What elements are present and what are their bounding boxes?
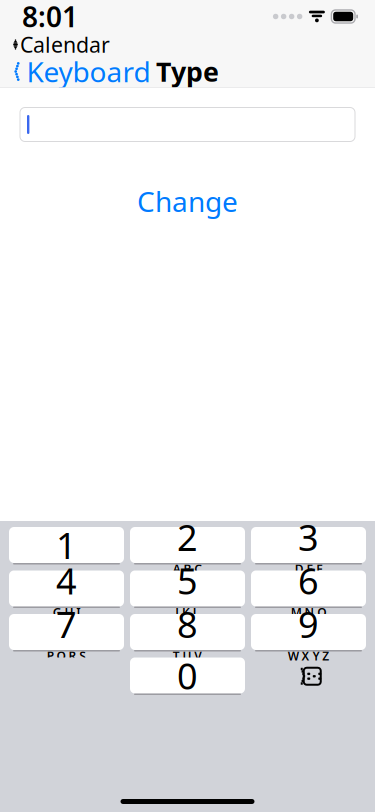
- staticText: Keyboard: [26, 53, 150, 90]
- staticText: 0: [177, 652, 198, 699]
- button[interactable]: 6: [251, 570, 366, 608]
- staticText: Change: [137, 182, 238, 220]
- staticText: E: [306, 561, 313, 577]
- button[interactable]: 8: [130, 614, 245, 651]
- staticText: H: [64, 604, 73, 620]
- staticText: L: [193, 604, 200, 620]
- staticText: T: [173, 648, 180, 664]
- staticText: 5: [177, 557, 198, 604]
- staticText: I: [76, 604, 80, 620]
- staticText: X: [302, 648, 310, 664]
- staticText: 8: [177, 600, 198, 648]
- staticText: A: [173, 561, 181, 577]
- staticText: B: [183, 561, 191, 577]
- button[interactable]: 7: [9, 614, 124, 651]
- staticText: Q: [57, 648, 66, 664]
- staticText: V: [194, 648, 202, 664]
- staticText: U: [182, 648, 191, 664]
- staticText: 2: [177, 513, 198, 561]
- staticText: F: [316, 561, 322, 577]
- button[interactable]: 5: [130, 570, 245, 608]
- button[interactable]: Keyboard: [0, 47, 154, 96]
- staticText: D: [295, 561, 304, 577]
- button[interactable]: 0: [130, 657, 245, 695]
- button[interactable]: 2: [130, 527, 245, 564]
- button[interactable]: Change: [115, 173, 260, 229]
- staticText: G: [53, 604, 62, 620]
- staticText: Z: [322, 648, 329, 664]
- staticText: J: [175, 604, 179, 620]
- button[interactable]: 3: [251, 527, 366, 564]
- staticText: C: [194, 561, 202, 577]
- staticText: 9: [298, 600, 319, 648]
- staticText: S: [79, 648, 86, 664]
- staticText: W: [288, 648, 299, 664]
- button[interactable]: 9: [251, 614, 366, 651]
- staticText: 4: [56, 557, 77, 604]
- staticText: P: [47, 648, 54, 664]
- staticText: 1: [56, 521, 77, 569]
- staticText: Y: [312, 648, 319, 664]
- staticText: N: [304, 604, 314, 620]
- staticText: M: [291, 604, 302, 620]
- staticText: 6: [298, 557, 319, 604]
- button[interactable]: 4: [9, 570, 124, 608]
- staticText: Calendar: [20, 30, 110, 59]
- button[interactable]: 1: [9, 527, 124, 564]
- staticText: K: [182, 604, 190, 620]
- button[interactable]: Delete: [251, 657, 366, 695]
- staticText: Type: [156, 54, 219, 89]
- staticText: 3: [298, 513, 319, 561]
- staticText: O: [317, 604, 326, 620]
- staticText: 7: [56, 600, 77, 648]
- staticText: 8:01: [22, 0, 78, 35]
- staticText: R: [68, 648, 76, 664]
